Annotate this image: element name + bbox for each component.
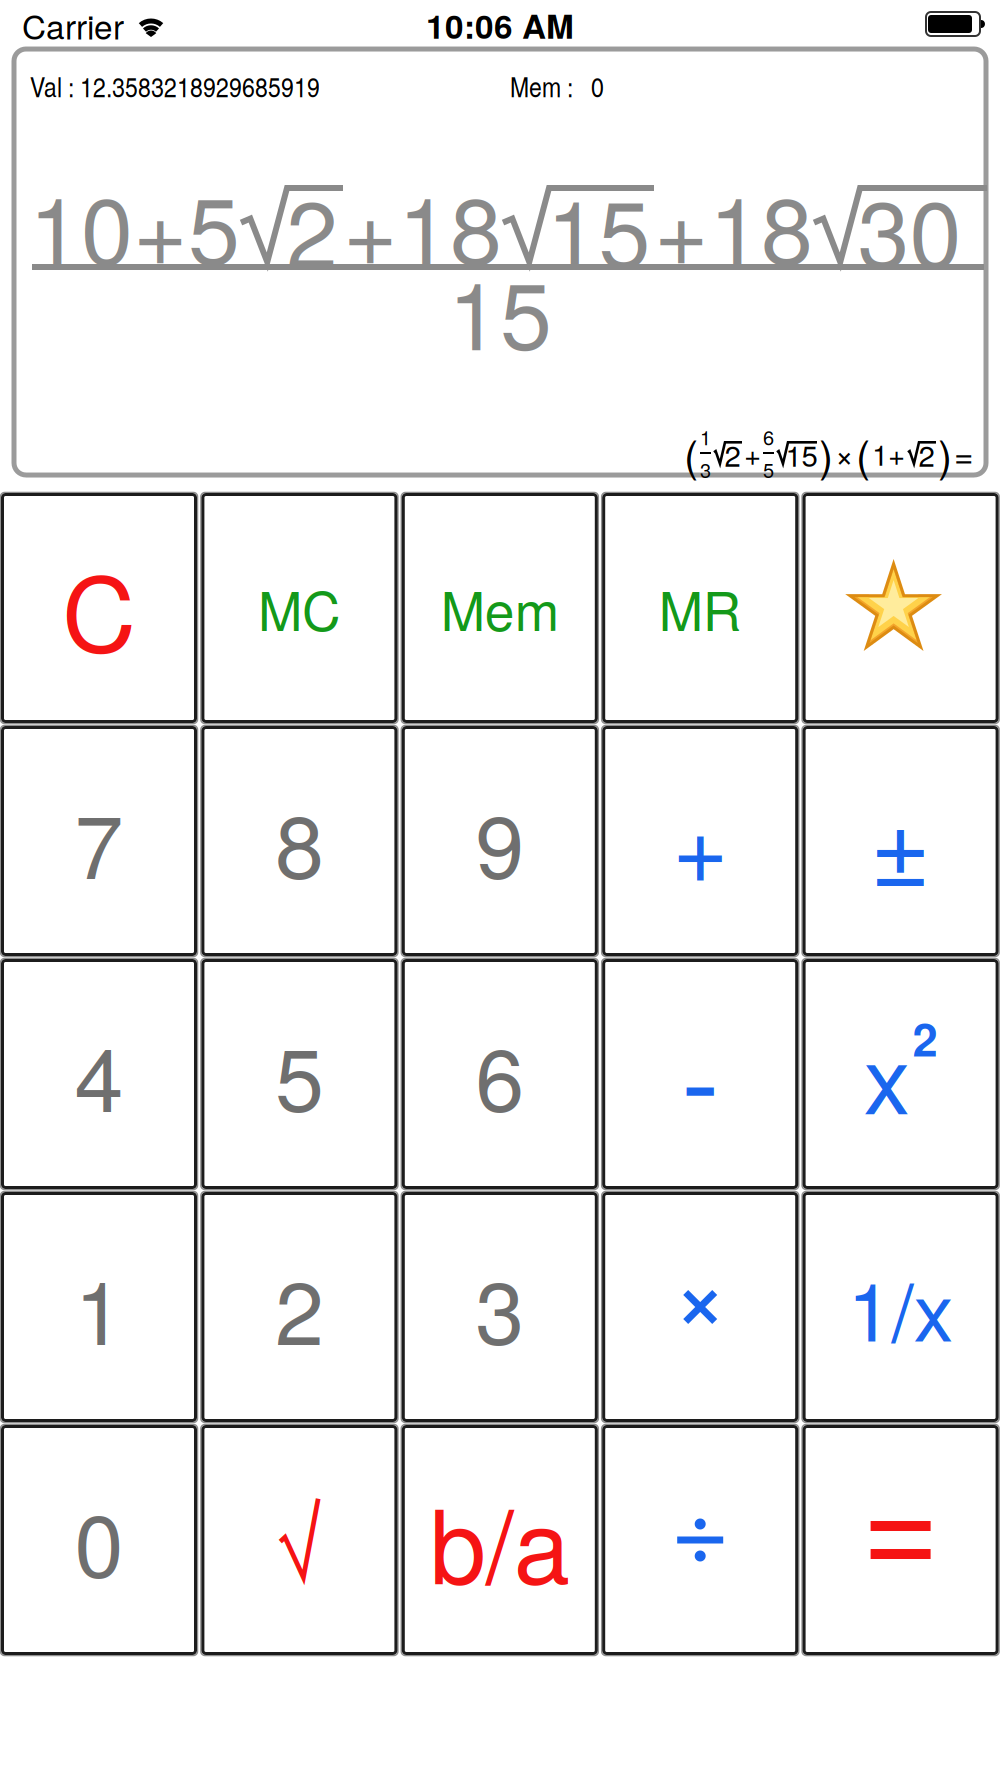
- button[interactable]: Equals: [804, 1426, 997, 1653]
- staticText: 10+5: [29, 158, 240, 292]
- button[interactable]: Square: [804, 960, 997, 1187]
- staticText: (: [684, 422, 698, 484]
- button[interactable]: 5: [203, 960, 396, 1187]
- button[interactable]: 4: [2, 960, 195, 1187]
- button[interactable]: Fraction: [403, 1426, 596, 1653]
- button[interactable]: 2: [203, 1193, 396, 1420]
- staticText: 9: [475, 778, 524, 904]
- staticText: Mem : 0: [510, 67, 604, 105]
- button[interactable]: 8: [203, 727, 396, 954]
- staticText: 1+: [872, 432, 905, 474]
- button[interactable]: Plus Minus: [804, 727, 997, 954]
- staticText: 7: [74, 778, 123, 904]
- staticText: Val : 12.3583218929685919: [30, 67, 320, 105]
- staticText: +: [672, 772, 728, 910]
- staticText: Mem: [441, 570, 559, 646]
- button[interactable]: 0: [2, 1426, 195, 1653]
- button[interactable]: Favorite: [804, 494, 997, 721]
- staticText: 30: [857, 161, 961, 295]
- button[interactable]: Clear: [2, 494, 195, 721]
- staticText: 6: [475, 1011, 524, 1137]
- staticText: 2: [286, 161, 338, 295]
- staticText: ): [819, 422, 833, 484]
- staticText: 1: [700, 422, 711, 451]
- staticText: ±: [870, 766, 931, 915]
- staticText: 2: [275, 1244, 324, 1370]
- button[interactable]: 3: [403, 1193, 596, 1420]
- staticText: C: [62, 534, 136, 681]
- button[interactable]: Subtract: [604, 960, 797, 1187]
- button[interactable]: Divide: [604, 1426, 797, 1653]
- staticText: 5: [763, 455, 774, 484]
- staticText: 15: [546, 161, 650, 295]
- button[interactable]: 1: [2, 1193, 195, 1420]
- staticText: 8: [275, 778, 324, 904]
- button[interactable]: Multiply: [604, 1193, 797, 1420]
- staticText: 0: [74, 1477, 123, 1603]
- staticText: Carrier: [22, 1, 124, 49]
- button[interactable]: 7: [2, 727, 195, 954]
- button[interactable]: Reciprocal: [804, 1193, 997, 1420]
- button[interactable]: Add: [604, 727, 797, 954]
- staticText: (: [856, 422, 870, 484]
- staticText: 2: [913, 1005, 938, 1070]
- staticText: 3: [700, 455, 711, 484]
- staticText: 15: [448, 243, 552, 377]
- staticText: +18: [654, 158, 813, 292]
- staticText: 2: [724, 433, 740, 475]
- staticText: ): [938, 422, 952, 484]
- staticText: -: [681, 992, 719, 1156]
- staticText: 6: [763, 422, 774, 451]
- staticText: 4: [74, 1011, 123, 1137]
- staticText: x: [864, 1007, 911, 1141]
- button[interactable]: Memory: [403, 494, 596, 721]
- staticText: 15: [785, 433, 817, 475]
- staticText: MC: [258, 570, 341, 646]
- staticText: ×: [835, 430, 854, 476]
- button[interactable]: Memory Clear: [203, 494, 396, 721]
- staticText: +18: [343, 158, 502, 292]
- staticText: √: [274, 1473, 325, 1607]
- staticText: 10:06 AM: [426, 1, 574, 49]
- staticText: 1/x: [848, 1250, 954, 1364]
- staticText: 1: [74, 1244, 123, 1370]
- button[interactable]: Memory Recall: [604, 494, 797, 721]
- staticText: b/a: [430, 1467, 570, 1612]
- staticText: 5: [275, 1011, 324, 1137]
- staticText: MR: [659, 570, 742, 646]
- button[interactable]: Square Root: [203, 1426, 396, 1653]
- button[interactable]: 6: [403, 960, 596, 1187]
- staticText: 3: [475, 1244, 524, 1370]
- button[interactable]: 9: [403, 727, 596, 954]
- staticText: 2: [918, 433, 934, 475]
- staticText: +: [744, 432, 761, 474]
- staticText: =: [954, 429, 973, 477]
